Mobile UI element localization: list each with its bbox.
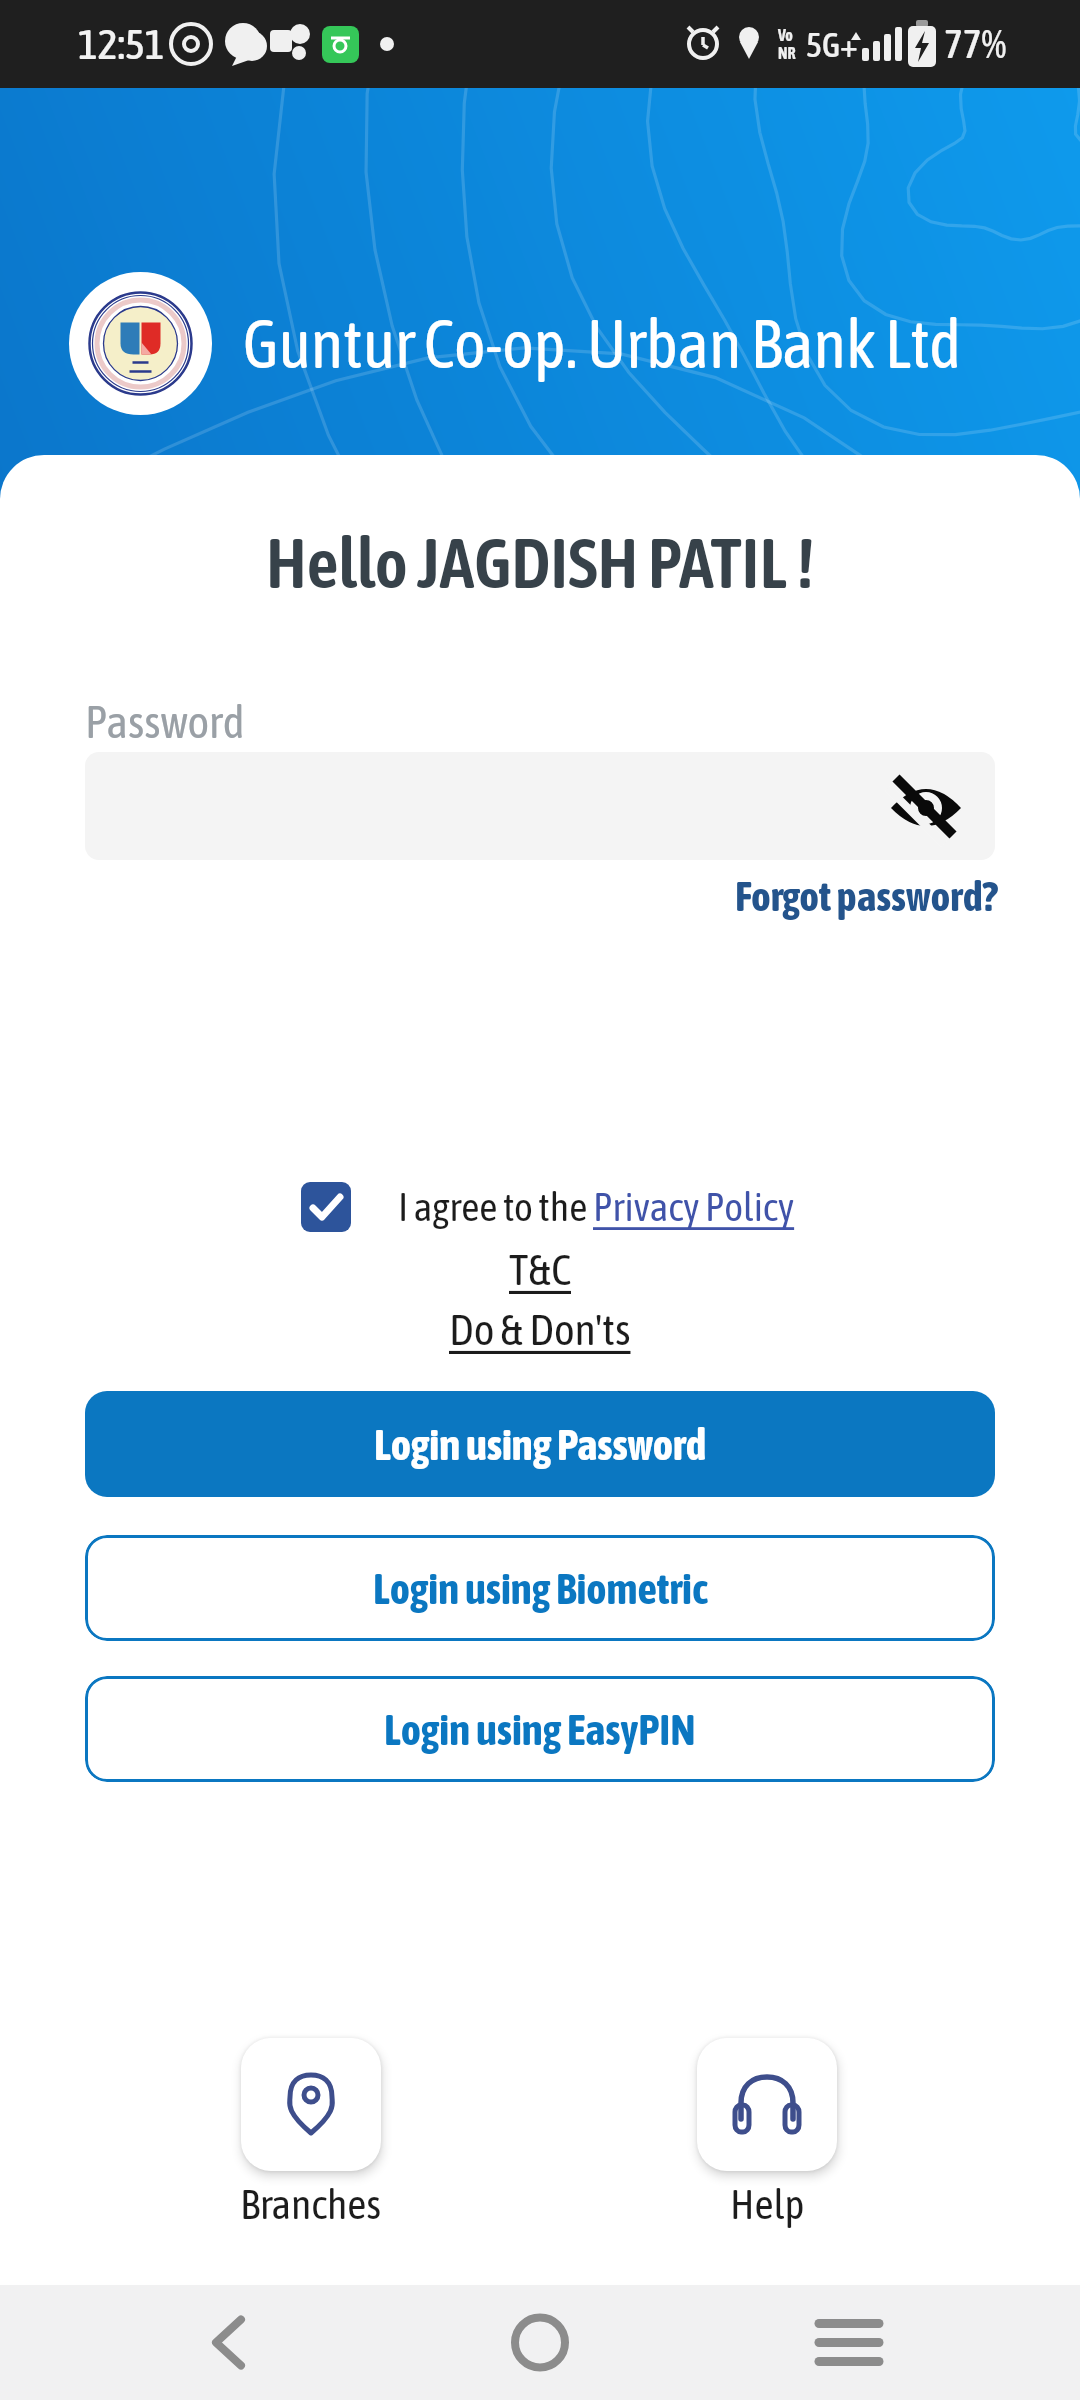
staticText: 5G+ — [806, 25, 858, 64]
staticText: I agree to the — [398, 1184, 593, 1230]
staticText: 12:51 — [78, 20, 165, 68]
button[interactable] — [85, 752, 995, 860]
staticText: Guntur Co-op. Urban Bank Ltd — [243, 305, 961, 382]
button[interactable]: Login using Password — [85, 1391, 995, 1497]
button[interactable]: Login using Biometric — [85, 1535, 995, 1641]
button[interactable]: Branches — [211, 2038, 411, 2228]
staticText: Login using Biometric — [373, 1564, 708, 1613]
staticText: Password — [85, 695, 1080, 748]
staticText: Login using EasyPIN — [384, 1705, 696, 1754]
button[interactable]: I agree to the — [301, 1182, 795, 1232]
staticText: Login using Password — [374, 1420, 707, 1469]
button[interactable]: Forgot password? — [735, 872, 998, 920]
staticText: Vo NR — [778, 26, 796, 62]
staticText: Do & Don'ts — [449, 1304, 631, 1354]
button[interactable]: T&C — [509, 1247, 571, 1291]
staticText: Hello JAGDISH PATIL ! — [266, 523, 815, 603]
button[interactable]: Login using EasyPIN — [85, 1676, 995, 1782]
button[interactable]: Do & Don'ts — [449, 1307, 631, 1351]
staticText: Privacy Policy — [593, 1184, 795, 1230]
staticText: Help — [730, 2180, 805, 2228]
staticText: T&C — [509, 1244, 571, 1294]
staticText: Branches — [240, 2180, 382, 2228]
staticText: 77% — [944, 21, 1007, 67]
button[interactable]: Help — [667, 2038, 867, 2228]
